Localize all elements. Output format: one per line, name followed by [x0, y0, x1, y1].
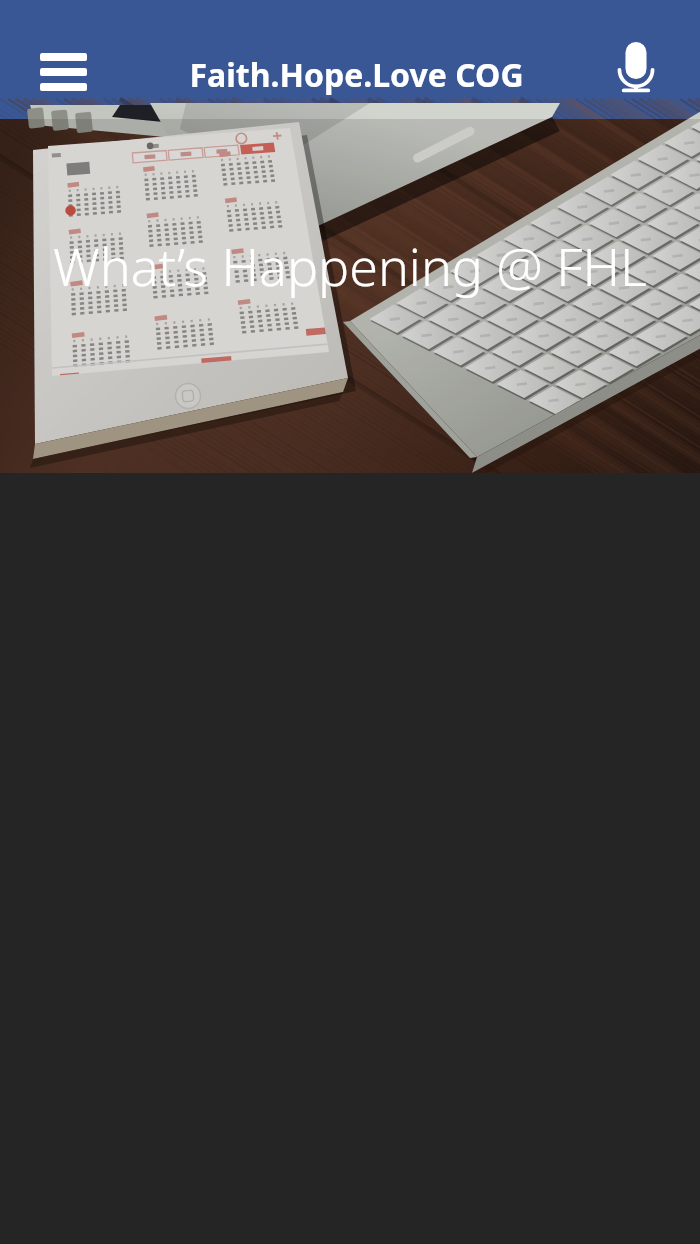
- staticText: What’s Happening @ FHL: [53, 230, 647, 301]
- button[interactable]: Voice search: [600, 31, 672, 103]
- staticText: Faith.Hope.Love COG: [189, 53, 524, 97]
- button[interactable]: Menu: [26, 34, 100, 108]
